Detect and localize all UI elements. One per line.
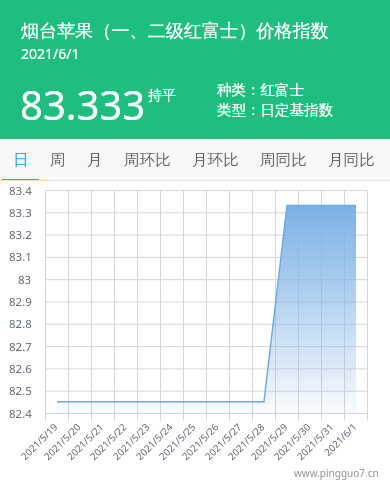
staticText: 月环比: [192, 150, 239, 170]
staticText: 月同比: [328, 150, 375, 170]
staticText: 2021/6/1: [21, 44, 80, 63]
button[interactable]: 周同比: [249, 139, 317, 181]
staticText: 周: [50, 150, 66, 170]
staticText: 烟台苹果（一、二级红富士）价格指数: [21, 20, 329, 43]
staticText: 种类：红富士: [217, 81, 304, 99]
staticText: 周同比: [260, 150, 307, 170]
button[interactable]: 月同比: [317, 139, 385, 181]
staticText: 月: [87, 150, 103, 170]
staticText: 持平: [148, 87, 176, 105]
button[interactable]: 月环比: [181, 139, 249, 181]
button[interactable]: 周环比: [113, 139, 181, 181]
staticText: 周环比: [124, 150, 171, 170]
staticText: 日: [13, 150, 29, 170]
staticText: 类型：日定基指数: [217, 101, 333, 119]
button[interactable]: 月: [76, 139, 113, 181]
button[interactable]: 周: [39, 139, 76, 181]
staticText: 83.333: [20, 77, 146, 131]
button[interactable]: 日: [2, 139, 39, 181]
